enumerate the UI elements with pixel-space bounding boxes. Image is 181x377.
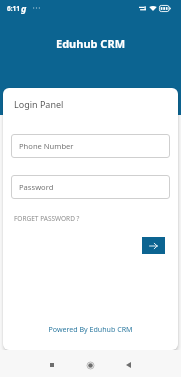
button[interactable]: Back: [116, 353, 140, 377]
staticText: Phone Number: [19, 141, 74, 151]
staticText: Eduhub CRM: [56, 36, 126, 51]
staticText: Powered By Eduhub CRM: [3, 324, 178, 334]
button[interactable]: FORGET PASSWORD ?: [14, 214, 80, 223]
button[interactable]: Phone Number: [11, 134, 170, 158]
staticText: 6:11: [7, 4, 20, 13]
button[interactable]: Password: [11, 175, 170, 199]
staticText: Password: [19, 182, 54, 192]
button[interactable]: Recent apps: [40, 353, 64, 377]
button[interactable]: Home: [78, 353, 102, 377]
staticText: Login Panel: [14, 98, 64, 110]
button[interactable]: Login: [142, 237, 165, 254]
staticText: g: [21, 2, 27, 14]
